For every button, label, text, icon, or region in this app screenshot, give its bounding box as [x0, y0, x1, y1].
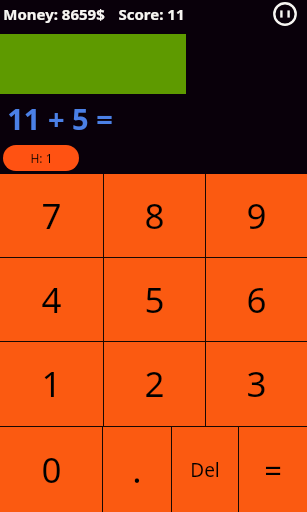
staticText: 1: [41, 360, 62, 408]
staticText: 3: [246, 360, 267, 408]
button[interactable]: .: [103, 427, 171, 512]
staticText: H: 1: [30, 150, 53, 166]
staticText: 2: [144, 360, 165, 408]
button[interactable]: 4: [0, 258, 103, 341]
staticText: 9: [246, 192, 267, 240]
button[interactable]: Pause: [271, 0, 299, 28]
staticText: Money: 8659$: [3, 4, 105, 24]
staticText: =: [264, 449, 282, 491]
button[interactable]: 3: [206, 342, 307, 426]
button[interactable]: 8: [104, 174, 205, 257]
button[interactable]: 6: [206, 258, 307, 341]
button[interactable]: 9: [206, 174, 307, 257]
staticText: .: [132, 446, 142, 494]
staticText: 7: [41, 192, 62, 240]
button[interactable]: Del: [172, 427, 238, 512]
staticText: Del: [190, 457, 220, 483]
staticText: 6: [246, 276, 267, 324]
staticText: 4: [41, 276, 62, 324]
staticText: 5: [144, 276, 165, 324]
button[interactable]: =: [239, 427, 307, 512]
button[interactable]: 2: [104, 342, 205, 426]
button[interactable]: 0: [0, 427, 102, 512]
button[interactable]: 5: [104, 258, 205, 341]
button[interactable]: 7: [0, 174, 103, 257]
staticText: 0: [41, 446, 62, 494]
button[interactable]: 1: [0, 342, 103, 426]
staticText: Score: 11: [118, 4, 185, 24]
staticText: 11 + 5 =: [7, 99, 113, 138]
staticText: 8: [144, 192, 165, 240]
button[interactable]: H: 1: [3, 145, 79, 171]
